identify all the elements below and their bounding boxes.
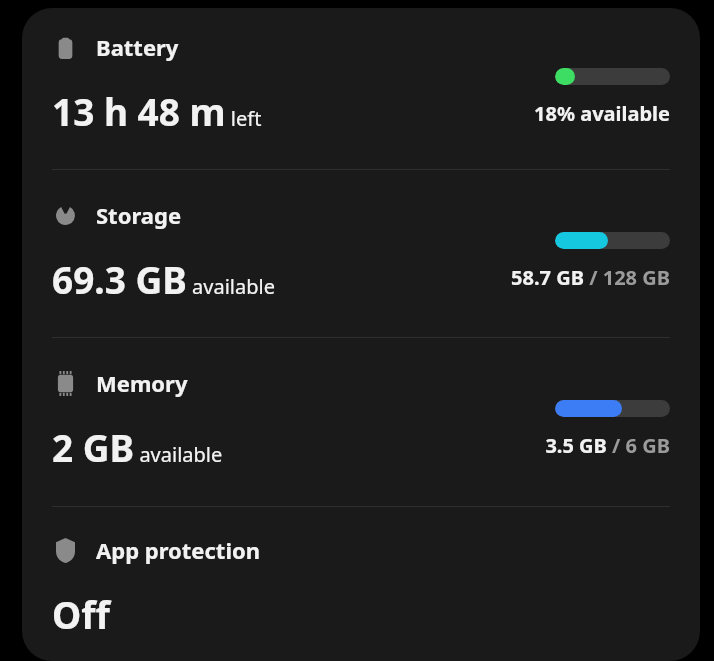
- staticText: 3.5 GB / 6 GB: [545, 432, 670, 459]
- staticText: Memory: [96, 368, 188, 398]
- staticText: 18% available: [534, 100, 670, 127]
- staticText: 2 GB available: [52, 422, 223, 472]
- button[interactable]: App protection: [52, 507, 670, 647]
- button[interactable]: Battery: [52, 8, 670, 169]
- staticText: 58.7 GB / 128 GB: [511, 264, 670, 291]
- button[interactable]: Storage: [52, 170, 670, 337]
- staticText: Storage: [96, 200, 182, 230]
- staticText: 13 h 48 m left: [52, 86, 262, 136]
- staticText: 69.3 GB available: [52, 254, 275, 304]
- button[interactable]: Memory: [52, 338, 670, 506]
- staticText: Off: [52, 589, 110, 639]
- staticText: App protection: [96, 535, 261, 565]
- staticText: Battery: [96, 32, 179, 62]
